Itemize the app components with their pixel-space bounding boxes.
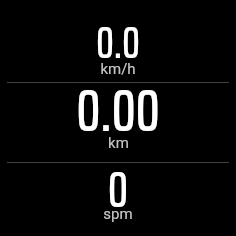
staticText: km <box>108 134 129 152</box>
staticText: km/h <box>100 60 136 78</box>
staticText: spm <box>103 205 133 223</box>
button[interactable]: Distance 0.00 kilometres <box>0 82 236 162</box>
staticText: 0.00 <box>76 63 160 157</box>
staticText: 0.0 <box>96 8 140 77</box>
button[interactable]: Speed 0.0 kilometres per hour <box>0 0 236 82</box>
staticText: 0 <box>108 150 128 229</box>
button[interactable]: Cadence 0 steps per minute <box>0 162 236 236</box>
